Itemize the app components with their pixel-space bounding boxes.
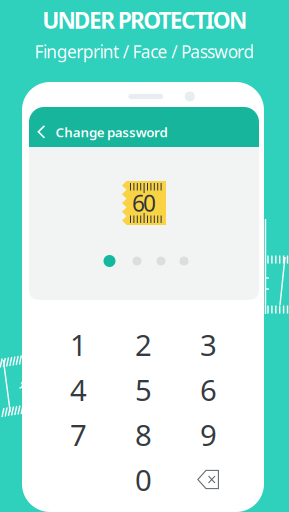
staticText: UNDER PROTECTION xyxy=(42,5,247,35)
staticText: 60 xyxy=(132,188,156,218)
button[interactable]: 2 xyxy=(111,322,176,367)
button[interactable]: 8 xyxy=(111,412,176,457)
button[interactable]: 4 xyxy=(46,367,111,412)
staticText: 4 xyxy=(70,370,87,409)
button[interactable]: 5 xyxy=(111,367,176,412)
staticText: 6 xyxy=(200,370,217,409)
staticText: 0 xyxy=(135,460,152,499)
button[interactable]: 3 xyxy=(176,322,241,367)
staticText: Fingerprint / Face / Password xyxy=(35,40,254,63)
staticText: 7 xyxy=(70,415,87,454)
button[interactable]: 0 xyxy=(111,457,176,502)
button[interactable]: Change password xyxy=(29,107,259,152)
button[interactable]: Delete xyxy=(176,457,241,502)
button[interactable]: 9 xyxy=(176,412,241,457)
staticText: 1 xyxy=(70,325,87,364)
button[interactable]: 6 xyxy=(176,367,241,412)
staticText: 9 xyxy=(200,415,217,454)
button[interactable]: 7 xyxy=(46,412,111,457)
staticText: 2 xyxy=(135,325,152,364)
staticText: Change password xyxy=(55,123,168,141)
staticText: 3 xyxy=(200,325,217,364)
staticText: 5 xyxy=(135,370,152,409)
button[interactable]: 1 xyxy=(46,322,111,367)
staticText: 8 xyxy=(135,415,152,454)
